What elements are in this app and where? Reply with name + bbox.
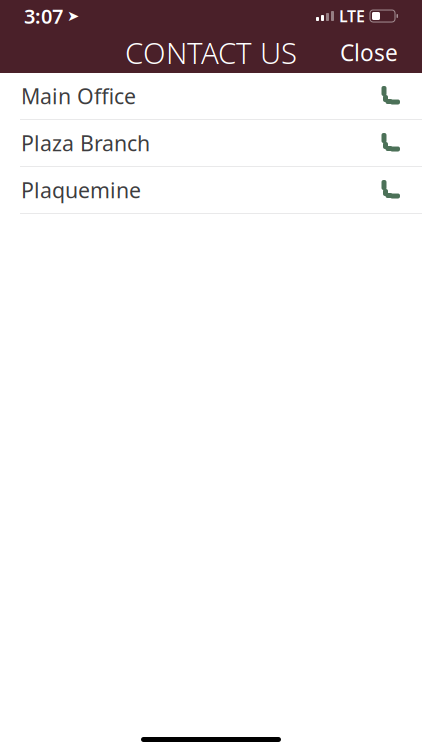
staticText: Plaquemine [21,176,141,204]
button[interactable]: Main Office [0,73,422,120]
staticText: Close [340,37,398,67]
button[interactable]: Close [328,29,410,75]
staticText: Plaza Branch [21,129,150,157]
button[interactable]: Plaza Branch [0,120,422,167]
staticText: 3:07 [24,3,63,29]
staticText: Main Office [21,82,136,110]
staticText: CONTACT US [125,33,297,72]
staticText: ➤ [67,8,79,24]
button[interactable]: Plaquemine [0,167,422,214]
staticText: LTE [339,5,365,27]
